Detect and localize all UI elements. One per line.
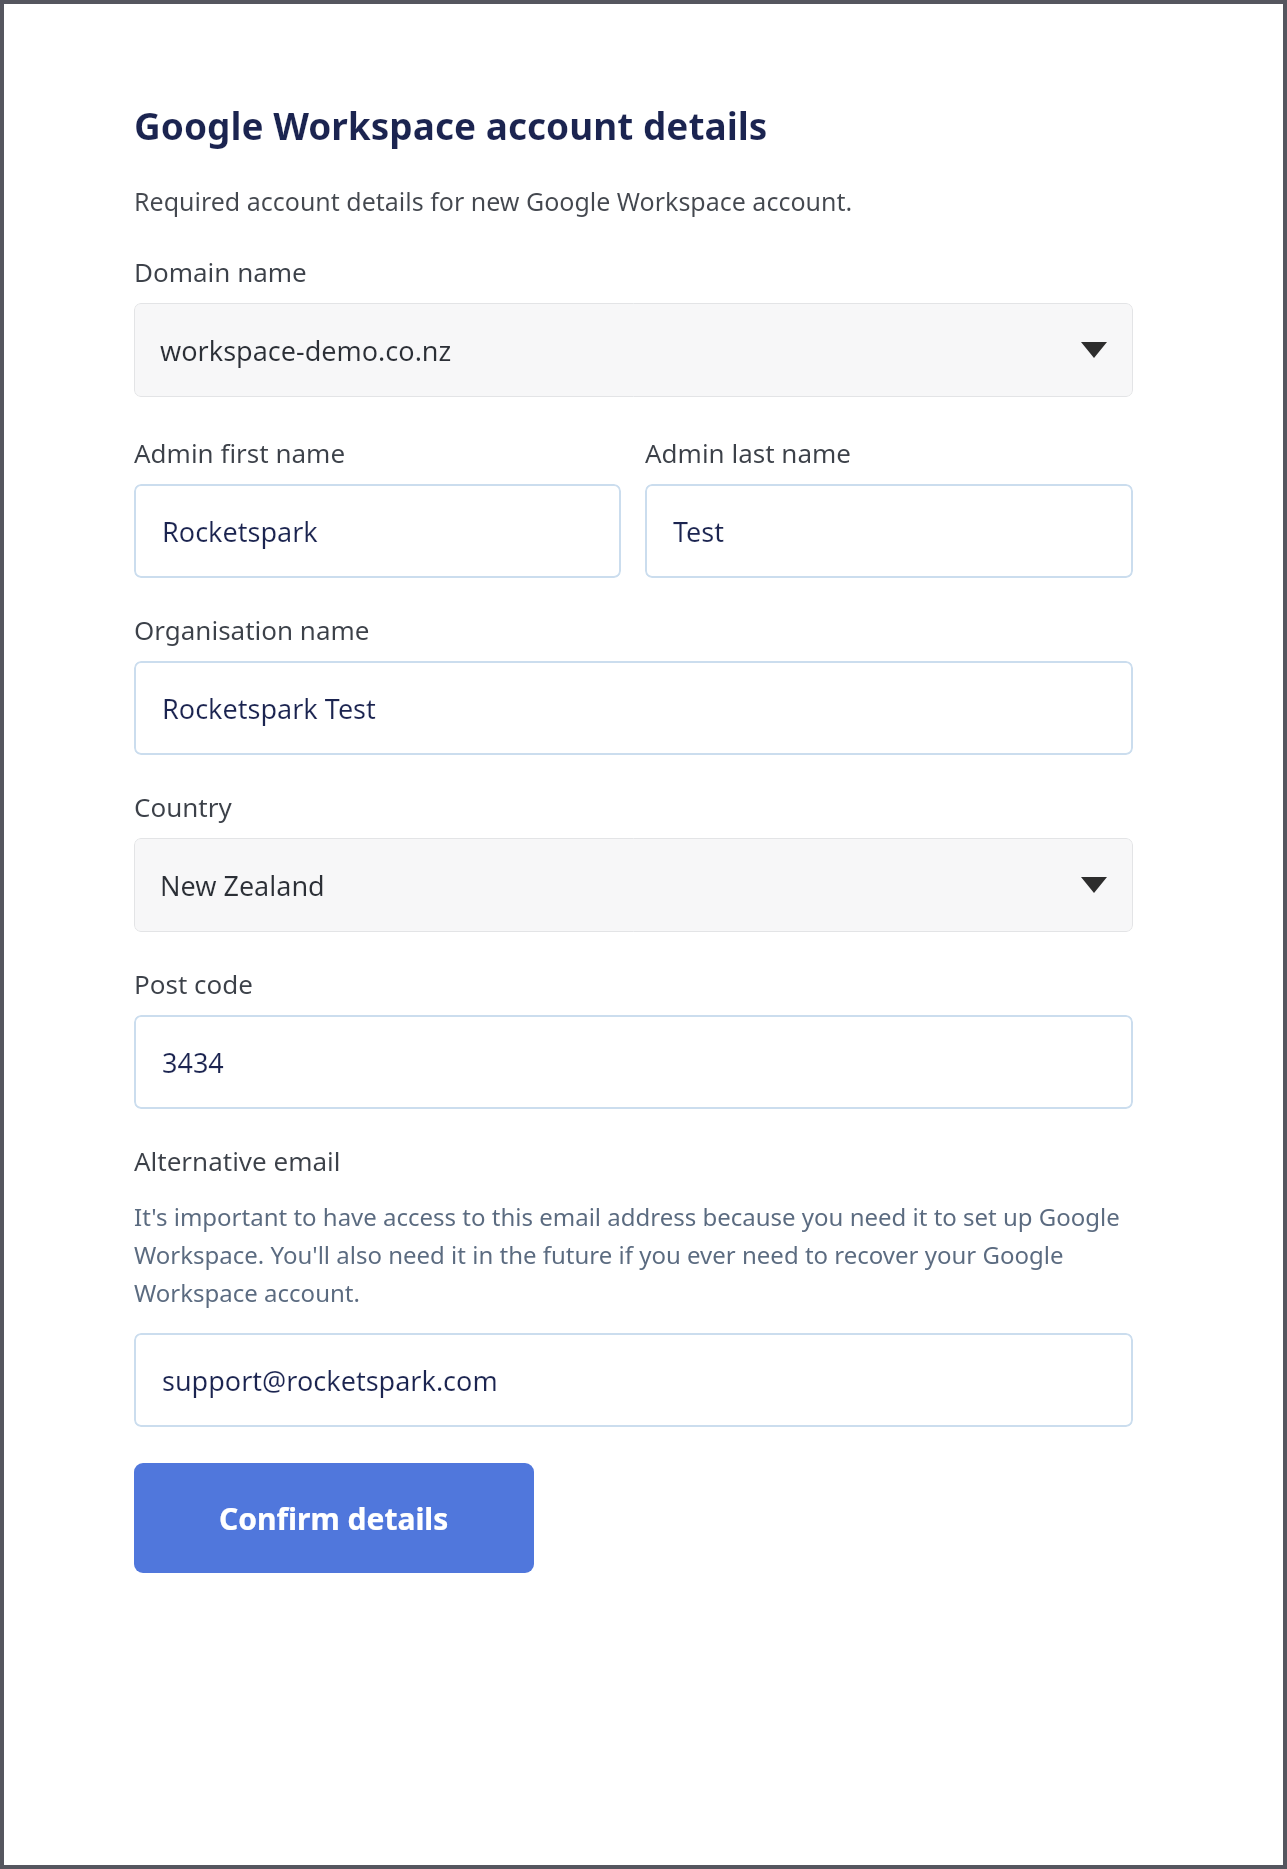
staticText: Required account details for new Google … <box>134 184 853 218</box>
staticText: Test <box>673 513 725 550</box>
other: Open dropdown <box>1081 342 1107 358</box>
staticText: Google Workspace account details <box>134 100 768 150</box>
staticText: Alternative email <box>134 1143 341 1178</box>
staticText: It's important to have access to this em… <box>134 1200 1133 1309</box>
button[interactable]: workspace-demo.co.nz <box>134 303 1133 397</box>
staticText: Post code <box>134 966 253 1001</box>
staticText: New Zealand <box>160 867 1081 904</box>
staticText: Rocketspark Test <box>162 690 376 727</box>
button[interactable]: Confirm details <box>134 1463 534 1573</box>
staticText: Admin last name <box>645 435 851 470</box>
button[interactable]: Rocketspark Test <box>134 661 1133 755</box>
staticText: Rocketspark <box>162 513 318 550</box>
button[interactable]: New Zealand <box>134 838 1133 932</box>
staticText: 3434 <box>162 1044 224 1081</box>
staticText: support@rocketspark.com <box>162 1362 498 1399</box>
staticText: Admin first name <box>134 435 346 470</box>
button[interactable]: Rocketspark <box>134 484 621 578</box>
button[interactable]: 3434 <box>134 1015 1133 1109</box>
staticText: Domain name <box>134 254 307 289</box>
button[interactable]: support@rocketspark.com <box>134 1333 1133 1427</box>
other: Open dropdown <box>1081 877 1107 893</box>
staticText: Confirm details <box>219 1498 449 1539</box>
button[interactable]: Test <box>645 484 1133 578</box>
staticText: Organisation name <box>134 612 370 647</box>
staticText: workspace-demo.co.nz <box>160 332 1081 369</box>
staticText: Country <box>134 789 232 824</box>
